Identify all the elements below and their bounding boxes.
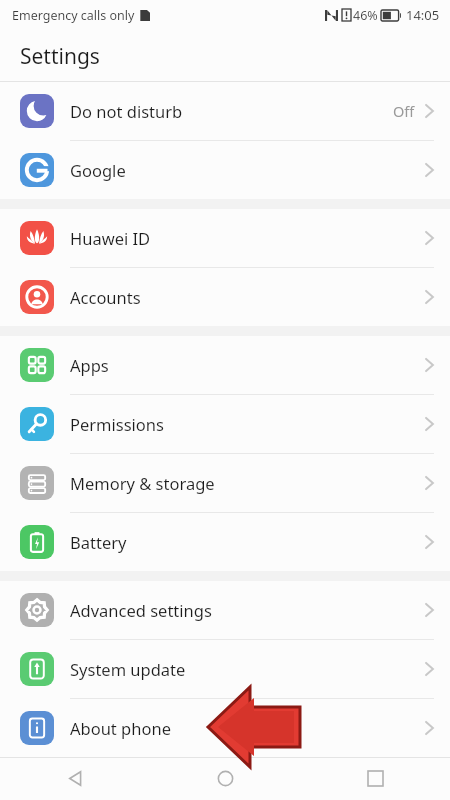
button[interactable]: Do not disturb [0, 82, 450, 140]
staticText: 14:05 [406, 6, 440, 24]
staticText: Apps [70, 354, 109, 376]
button[interactable]: About phone [0, 699, 450, 757]
staticText: System update [70, 658, 186, 680]
staticText: Huawei ID [70, 227, 151, 249]
button[interactable]: Battery [0, 513, 450, 571]
staticText: Advanced settings [70, 599, 212, 621]
staticText: Google [70, 159, 126, 181]
button[interactable]: System update [0, 640, 450, 698]
button[interactable]: Home [150, 757, 300, 800]
staticText: Battery [70, 531, 127, 553]
button[interactable]: Recent apps [300, 757, 450, 800]
button[interactable]: Permissions [0, 395, 450, 453]
button[interactable]: Huawei ID [0, 209, 450, 267]
staticText: Permissions [70, 413, 164, 435]
staticText: Settings [20, 42, 100, 71]
staticText: Do not disturb [70, 100, 183, 122]
button[interactable]: Advanced settings [0, 581, 450, 639]
button[interactable]: Apps [0, 336, 450, 394]
staticText: Memory & storage [70, 472, 215, 494]
staticText: About phone [70, 717, 171, 739]
button[interactable]: Memory & storage [0, 454, 450, 512]
staticText: Emergency calls only [12, 7, 135, 24]
button[interactable]: Google [0, 141, 450, 199]
staticText: 46% [353, 7, 378, 24]
button[interactable]: Accounts [0, 268, 450, 326]
staticText: Off [393, 101, 415, 121]
staticText: Accounts [70, 286, 141, 308]
button[interactable]: Back [0, 757, 150, 800]
